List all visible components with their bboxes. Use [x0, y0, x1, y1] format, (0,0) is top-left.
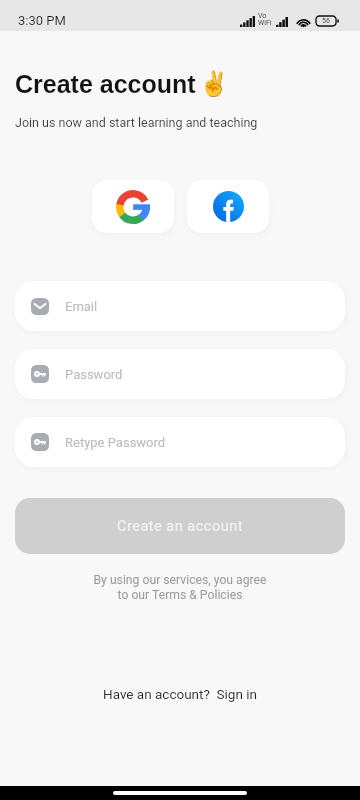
- staticText: ✌️: [199, 70, 229, 98]
- staticText: 56: [322, 17, 330, 25]
- button[interactable]: Have an account? Sign in: [103, 686, 257, 702]
- button[interactable]: Email: [15, 281, 345, 331]
- staticText: Retype Password: [65, 435, 166, 450]
- staticText: Have an account? Sign in: [103, 686, 257, 702]
- staticText: Vo: [258, 12, 267, 20]
- staticText: Password: [65, 367, 123, 382]
- button[interactable]: Password: [15, 349, 345, 399]
- staticText: 3:30 PM: [18, 13, 66, 28]
- button[interactable]: Sign up with Google: [92, 180, 174, 233]
- staticText: Create an account: [117, 518, 243, 535]
- staticText: Create account: [15, 70, 196, 98]
- button[interactable]: Create an account: [15, 498, 345, 554]
- staticText: Join us now and start learning and teach…: [15, 115, 258, 130]
- button[interactable]: Retype Password: [15, 417, 345, 467]
- button[interactable]: Sign up with Facebook: [187, 180, 269, 233]
- staticText: WiFi: [258, 19, 272, 27]
- staticText: By using our services, you agree to our …: [0, 573, 360, 602]
- staticText: Email: [65, 299, 98, 314]
